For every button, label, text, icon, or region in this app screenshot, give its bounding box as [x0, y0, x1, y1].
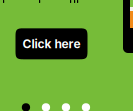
- button[interactable]: Click here: [15, 28, 87, 59]
- staticText: Click here: [22, 36, 80, 51]
